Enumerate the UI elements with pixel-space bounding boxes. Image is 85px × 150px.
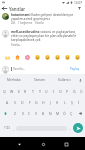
staticText: Y [39,89,41,94]
button[interactable]: Emoji [34,54,41,61]
staticText: Yanıtla... [11,43,22,47]
button[interactable]: Voice input [77,77,84,84]
staticText: Yanıtla [35,21,44,25]
button[interactable]: Ü [78,86,85,97]
staticText: ?123 [4,126,10,130]
button[interactable]: Ö [61,108,68,119]
button[interactable]: M [54,108,61,119]
button[interactable]: O [57,86,64,97]
staticText: K [56,100,59,105]
staticText: , [13,126,14,131]
staticText: İ [78,100,80,105]
button[interactable]: C [26,108,33,119]
button[interactable]: Y [36,86,43,97]
staticText: X [22,111,24,116]
button[interactable]: Filter [76,5,83,12]
staticText: D [21,100,24,105]
staticText: Ö [63,111,66,116]
button[interactable]: Emoji [4,54,11,61]
button[interactable]: Home [38,139,48,149]
button[interactable]: Tamam [27,74,52,86]
button[interactable]: T [29,86,36,97]
staticText: Ş [71,100,73,105]
button[interactable]: İ [75,97,82,108]
staticText: Z [14,111,16,116]
button[interactable]: Emoji [54,54,61,61]
staticText: Ç [70,111,73,116]
staticText: Tamam [34,78,46,82]
staticText: 1 beğenme [18,21,33,25]
button[interactable]: W [8,86,15,97]
staticText: Ü [80,89,83,94]
staticText: Merhaba [7,78,21,82]
staticText: P [66,89,69,94]
button[interactable]: Back [1,5,8,12]
button[interactable]: X [19,108,26,119]
staticText: M [56,111,60,116]
button[interactable]: F [26,97,33,108]
button[interactable]: Kullanıcı [52,74,77,86]
button[interactable]: U [43,86,50,97]
button[interactable]: S [11,97,19,108]
button[interactable]: J [47,97,54,108]
button[interactable]: Emoji [74,54,81,61]
button[interactable]: Back [14,139,24,149]
staticText: Yanıtlar [9,6,26,12]
staticText: V [35,111,38,116]
button[interactable]: L [61,97,68,108]
button[interactable]: Paylaş [69,66,81,72]
button[interactable]: Merhaba [1,74,27,86]
button[interactable]: B [40,108,47,119]
button[interactable]: D [19,97,26,108]
staticText: S [14,100,16,105]
button[interactable]: A [3,97,11,108]
button[interactable]: Q [0,86,8,97]
staticText: mefLusetibrudino sözünü ve paylaşanlara,… [11,30,83,42]
staticText: Ğ [73,89,76,94]
staticText: O [59,89,62,94]
button[interactable]: H [40,97,47,108]
staticText: E [18,89,20,94]
button[interactable]: V [33,108,40,119]
button[interactable]: Emoji [44,54,51,61]
staticText: G [35,100,38,105]
button[interactable]: ?123 [2,120,11,136]
staticText: L [64,100,66,105]
button[interactable]: G [33,97,40,108]
staticText: A [6,100,9,105]
staticText: I [53,89,55,94]
button[interactable]: K [54,97,61,108]
button[interactable]: Emoji [14,54,21,61]
button[interactable]: Emoji [24,54,31,61]
button[interactable]: Ç [68,108,75,119]
staticText: B [42,111,45,116]
staticText: U [45,89,48,94]
button[interactable]: Z [11,108,19,119]
staticText: . [69,126,70,131]
button[interactable]: , [11,120,16,136]
staticText: Kullanıcı [58,78,71,82]
staticText: 20s [11,21,16,25]
staticText: H [42,100,45,105]
button[interactable]: Ğ [71,86,78,97]
button[interactable]: R [22,86,29,97]
button[interactable]: Backspace [75,108,85,119]
button[interactable]: N [47,108,54,119]
staticText: T [32,89,34,94]
button[interactable]: Recents [61,139,71,149]
staticText: W [10,89,14,94]
staticText: Q [3,89,6,94]
button[interactable]: P [64,86,71,97]
staticText: Yanıtla... [13,67,26,71]
staticText: N [49,111,52,116]
button[interactable]: Ş [68,97,75,108]
button[interactable]: Shift [0,108,11,119]
staticText: 14:07 [74,1,83,5]
button[interactable]: Send [73,123,83,133]
button[interactable]: I [50,86,57,97]
staticText: R [24,89,27,94]
button[interactable]: Emoji [64,54,71,61]
button[interactable]: E [15,86,22,97]
